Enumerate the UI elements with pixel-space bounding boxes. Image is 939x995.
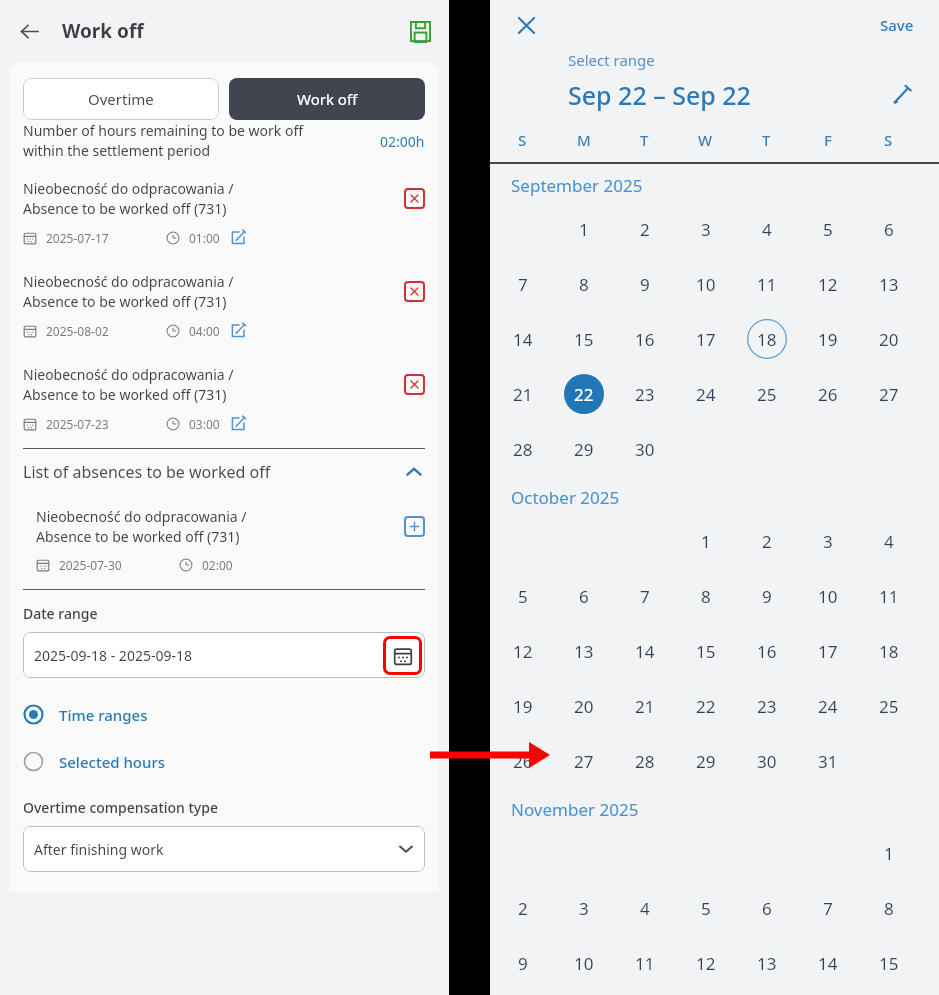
button[interactable]: List of absences to be worked off [23, 449, 425, 495]
button[interactable]: 8 [564, 264, 604, 304]
button[interactable]: 3 [686, 209, 726, 249]
button[interactable]: 24 [686, 374, 726, 414]
button[interactable]: 2 [503, 888, 543, 928]
button[interactable]: 14 [808, 943, 848, 983]
button[interactable]: 17 [686, 319, 726, 359]
button[interactable]: 29 [564, 429, 604, 469]
button[interactable]: 25 [869, 686, 909, 726]
button[interactable]: 14 [625, 631, 665, 671]
button[interactable]: 15 [686, 631, 726, 671]
button[interactable]: Edit [230, 229, 247, 246]
button[interactable]: Delete [404, 188, 425, 209]
button[interactable]: 16 [747, 631, 787, 671]
button[interactable]: Close [511, 10, 541, 40]
button[interactable]: 28 [503, 429, 543, 469]
button[interactable]: 6 [564, 576, 604, 616]
button[interactable]: 23 [625, 374, 665, 414]
button[interactable]: 15 [564, 319, 604, 359]
button[interactable]: Time ranges [23, 700, 425, 729]
button[interactable]: 8 [686, 576, 726, 616]
button[interactable]: Selected hours [23, 747, 425, 776]
button[interactable]: 31 [808, 741, 848, 781]
button[interactable]: Pick date range [383, 636, 422, 675]
button[interactable]: 19 [503, 686, 543, 726]
button[interactable]: Save [876, 11, 918, 39]
button[interactable]: 6 [747, 888, 787, 928]
button[interactable]: 7 [625, 576, 665, 616]
button[interactable]: 1 [869, 833, 909, 873]
button[interactable]: 13 [564, 631, 604, 671]
button[interactable]: 26 [503, 741, 543, 781]
button[interactable]: 18 [747, 319, 787, 359]
button[interactable]: 28 [625, 741, 665, 781]
button[interactable]: 12 [686, 943, 726, 983]
button[interactable]: 16 [625, 319, 665, 359]
button[interactable]: 2 [625, 209, 665, 249]
button[interactable]: 7 [503, 264, 543, 304]
button[interactable]: 1 [686, 521, 726, 561]
button[interactable]: 1 [564, 209, 604, 249]
button[interactable]: 7 [808, 888, 848, 928]
button[interactable]: 9 [747, 576, 787, 616]
button[interactable]: 15 [869, 943, 909, 983]
button[interactable]: 20 [869, 319, 909, 359]
button[interactable]: 13 [747, 943, 787, 983]
button[interactable]: 11 [869, 576, 909, 616]
button[interactable]: 24 [808, 686, 848, 726]
button[interactable]: 8 [869, 888, 909, 928]
button[interactable]: 20 [564, 686, 604, 726]
button[interactable]: Overtime [23, 78, 219, 120]
button[interactable]: Add [404, 516, 425, 537]
button[interactable]: 4 [869, 521, 909, 561]
button[interactable]: 10 [686, 264, 726, 304]
button[interactable]: 13 [869, 264, 909, 304]
button[interactable]: Delete [404, 281, 425, 302]
button[interactable]: 4 [747, 209, 787, 249]
button[interactable]: After finishing work [23, 826, 425, 872]
button[interactable]: Work off [229, 78, 425, 120]
button[interactable]: 3 [564, 888, 604, 928]
button[interactable]: 10 [808, 576, 848, 616]
button[interactable]: 5 [686, 888, 726, 928]
button[interactable]: 12 [503, 631, 543, 671]
button[interactable]: 3 [808, 521, 848, 561]
button[interactable]: 26 [808, 374, 848, 414]
button[interactable]: Edit [230, 415, 247, 432]
button[interactable]: 17 [808, 631, 848, 671]
button[interactable]: 21 [625, 686, 665, 726]
button[interactable]: 5 [503, 576, 543, 616]
button[interactable]: Edit dates [885, 78, 919, 112]
button[interactable]: 14 [503, 319, 543, 359]
button[interactable]: 18 [869, 631, 909, 671]
button[interactable]: 25 [747, 374, 787, 414]
button[interactable]: 2 [747, 521, 787, 561]
button[interactable]: Edit [230, 322, 247, 339]
button[interactable]: 9 [625, 264, 665, 304]
button[interactable]: 11 [747, 264, 787, 304]
button[interactable]: 27 [869, 374, 909, 414]
button[interactable]: 23 [747, 686, 787, 726]
button[interactable]: 22 [686, 686, 726, 726]
button[interactable]: 30 [747, 741, 787, 781]
button[interactable]: 11 [625, 943, 665, 983]
button[interactable]: 29 [686, 741, 726, 781]
button[interactable]: 10 [564, 943, 604, 983]
button[interactable]: 27 [564, 741, 604, 781]
button[interactable]: 12 [808, 264, 848, 304]
button[interactable]: Back [14, 16, 44, 46]
button[interactable]: 6 [869, 209, 909, 249]
button[interactable]: 4 [625, 888, 665, 928]
button[interactable]: 22 [564, 374, 604, 414]
button[interactable]: Save [405, 16, 435, 46]
button[interactable]: 30 [625, 429, 665, 469]
button[interactable]: 5 [808, 209, 848, 249]
button[interactable]: 21 [503, 374, 543, 414]
button[interactable]: Delete [404, 374, 425, 395]
